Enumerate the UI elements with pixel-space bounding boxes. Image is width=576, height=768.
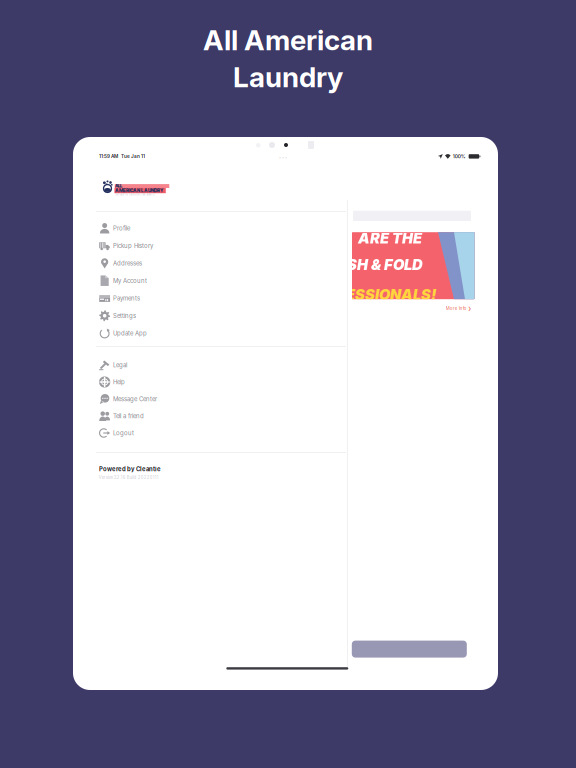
button[interactable]: Settings — [99, 307, 349, 324]
button[interactable]: Help — [99, 373, 349, 390]
staticText: • • • — [279, 156, 287, 160]
button[interactable]: Message Center — [99, 390, 349, 407]
staticText: 100% — [453, 153, 466, 159]
staticText: My Account — [113, 277, 147, 284]
staticText: Settings — [113, 312, 136, 319]
button[interactable]: Logout — [99, 424, 349, 441]
staticText: AMERICAN LAUNDRY — [115, 188, 163, 193]
staticText: SH & FOLD — [347, 256, 423, 273]
button[interactable]: Pickup History — [99, 237, 349, 254]
staticText: Powered by Cleantie — [99, 465, 161, 473]
button[interactable]: My Account — [99, 272, 349, 289]
staticText: Profile — [113, 225, 130, 232]
staticText: Logout — [113, 429, 134, 437]
staticText: More Info ❯ — [446, 306, 472, 311]
staticText: THE BEST IN LAUNDRY CARE SERVICE — [115, 193, 154, 196]
staticText: ESSIONALS! — [346, 286, 437, 303]
staticText: Legal — [113, 361, 127, 369]
button[interactable]: Payments — [99, 289, 349, 307]
staticText: All American — [203, 23, 373, 57]
button[interactable]: Update App — [99, 324, 349, 342]
button[interactable]: Tell a friend — [99, 407, 349, 424]
staticText: ARE THE — [358, 229, 422, 247]
staticText: Addresses — [113, 260, 142, 267]
button[interactable]: More Info ❯ — [432, 305, 472, 311]
staticText: Tell a friend — [113, 412, 144, 420]
button[interactable]: Legal — [99, 356, 349, 373]
staticText: Message Center — [113, 395, 157, 403]
staticText: ALL — [115, 183, 122, 188]
staticText: Update App — [113, 330, 147, 337]
staticText: Payments — [113, 295, 140, 302]
staticText: 11:59 AM Tue Jan 11 — [99, 153, 145, 159]
button[interactable]: Profile — [99, 219, 349, 237]
staticText: Pickup History — [113, 242, 153, 249]
staticText: Help — [113, 378, 125, 386]
button[interactable]: Addresses — [99, 254, 349, 272]
staticText: Version 3.2.16 Build 20220111 — [99, 475, 159, 480]
staticText: Laundry — [233, 60, 343, 94]
